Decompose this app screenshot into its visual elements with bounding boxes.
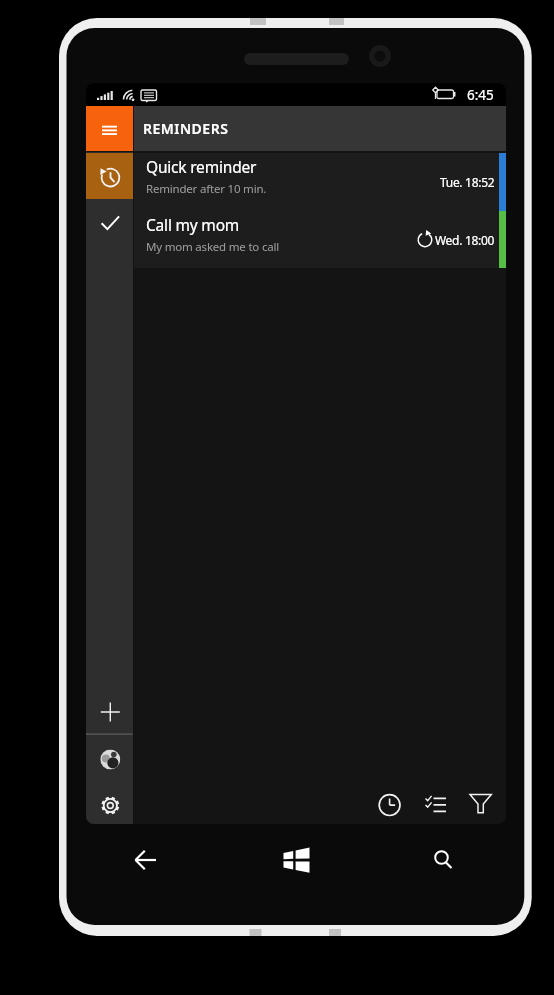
button[interactable] — [90, 795, 131, 816]
button[interactable] — [88, 700, 131, 724]
button[interactable] — [458, 793, 483, 818]
button[interactable] — [121, 836, 169, 884]
staticText: Wed. 18:00 — [435, 232, 495, 248]
button[interactable] — [421, 793, 446, 818]
button[interactable] — [272, 836, 320, 884]
staticText: My mom asked me to call — [146, 239, 280, 255]
button[interactable]: Call my mom — [86, 211, 506, 268]
staticText: Quick reminder — [146, 156, 257, 177]
button[interactable] — [420, 836, 468, 884]
button[interactable] — [86, 106, 133, 151]
staticText: Call my mom — [146, 214, 240, 235]
staticText: REMINDERS — [143, 119, 229, 138]
button[interactable] — [377, 793, 402, 818]
staticText: 6:45 — [467, 86, 494, 104]
staticText: Reminder after 10 min. — [146, 181, 267, 197]
button[interactable]: Quick reminder — [86, 153, 506, 211]
button[interactable] — [90, 749, 131, 770]
staticText: Tue. 18:52 — [440, 174, 495, 190]
